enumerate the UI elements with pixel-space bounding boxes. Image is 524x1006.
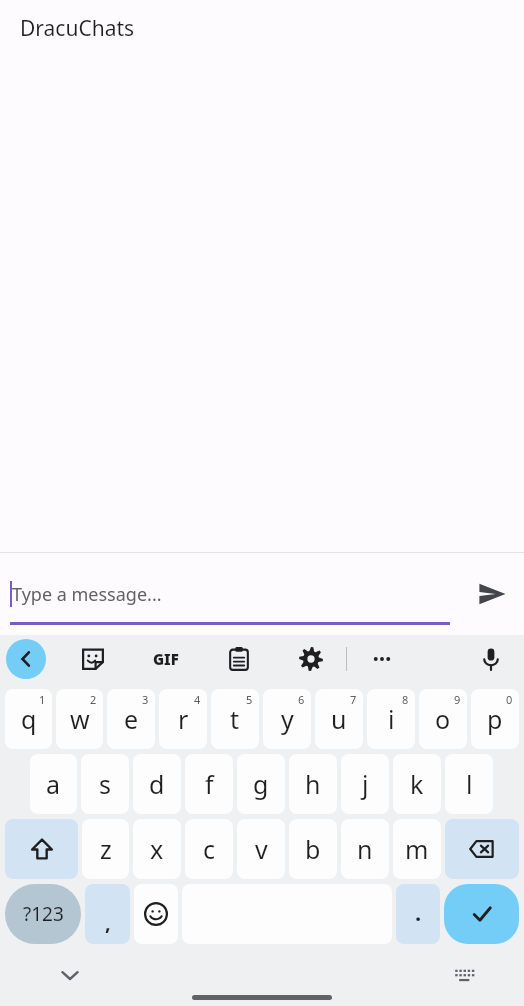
staticText: g	[253, 767, 269, 801]
staticText: GIF	[153, 649, 179, 669]
staticText: y	[281, 702, 294, 736]
staticText: i	[388, 702, 395, 736]
button[interactable]: r	[159, 689, 207, 749]
button[interactable]: i	[367, 689, 415, 749]
button[interactable]: a	[30, 754, 77, 814]
button[interactable]: o	[419, 689, 467, 749]
staticText: 1	[39, 692, 46, 707]
button[interactable]: g	[237, 754, 285, 814]
staticText: c	[203, 832, 216, 866]
button[interactable]: n	[341, 819, 389, 879]
button[interactable]: More	[361, 638, 403, 680]
button[interactable]: Type a message...	[10, 553, 450, 635]
button[interactable]: w	[56, 689, 103, 749]
staticText: 8	[402, 692, 409, 707]
staticText: 2	[90, 692, 97, 707]
staticText: 9	[454, 692, 461, 707]
staticText: 7	[350, 692, 357, 707]
button[interactable]: ?123	[5, 884, 81, 944]
staticText: ,	[105, 909, 111, 936]
staticText: 4	[194, 692, 201, 707]
button[interactable]: t	[211, 689, 259, 749]
staticText: n	[357, 832, 373, 866]
button[interactable]: Settings	[290, 638, 332, 680]
staticText: z	[100, 832, 112, 866]
button[interactable]: Enter	[444, 884, 519, 944]
button[interactable]: p	[471, 689, 519, 749]
staticText: 6	[298, 692, 305, 707]
staticText: t	[230, 702, 240, 736]
button[interactable]: j	[341, 754, 389, 814]
button[interactable]: u	[315, 689, 363, 749]
button[interactable]: s	[81, 754, 129, 814]
button[interactable]: Voice input	[470, 638, 512, 680]
button[interactable]: k	[393, 754, 441, 814]
button[interactable]: Shift	[5, 819, 78, 879]
staticText: u	[331, 702, 347, 736]
staticText: .	[415, 897, 422, 927]
staticText: p	[487, 702, 503, 736]
staticText: 3	[142, 692, 149, 707]
staticText: ?123	[23, 901, 64, 927]
button[interactable]: h	[289, 754, 337, 814]
button[interactable]: Emoji	[134, 884, 178, 944]
button[interactable]: Backspace	[445, 819, 519, 879]
button[interactable]: e	[107, 689, 155, 749]
button[interactable]: Send	[460, 553, 524, 635]
staticText: 0	[506, 692, 513, 707]
button[interactable]: z	[82, 819, 129, 879]
staticText: o	[435, 702, 451, 736]
button[interactable]: f	[185, 754, 233, 814]
button[interactable]: GIF	[144, 637, 188, 681]
staticText: q	[21, 702, 37, 736]
button[interactable]: Stickers	[72, 638, 114, 680]
staticText: e	[124, 702, 139, 736]
staticText: 5	[246, 692, 253, 707]
button[interactable]: q	[5, 689, 52, 749]
button[interactable]: d	[133, 754, 181, 814]
button[interactable]: b	[289, 819, 337, 879]
staticText: b	[305, 832, 321, 866]
staticText: j	[362, 767, 369, 801]
button[interactable]: Back	[6, 639, 46, 679]
button[interactable]: Clipboard	[218, 638, 260, 680]
staticText: a	[46, 767, 61, 801]
button[interactable]: v	[237, 819, 285, 879]
staticText: w	[70, 702, 90, 736]
button[interactable]: c	[185, 819, 233, 879]
button[interactable]: m	[393, 819, 441, 879]
button[interactable]: x	[133, 819, 181, 879]
staticText: m	[405, 832, 429, 866]
staticText: s	[99, 767, 111, 801]
staticText: l	[466, 767, 473, 801]
button[interactable]: Change keyboard	[444, 955, 484, 995]
staticText: v	[255, 832, 268, 866]
button[interactable]: .	[396, 884, 440, 944]
button[interactable]: y	[263, 689, 311, 749]
staticText: Type a message...	[12, 582, 162, 607]
staticText: r	[178, 702, 189, 736]
staticText: DracuChats	[20, 14, 135, 43]
button[interactable]: ,	[85, 884, 130, 944]
button[interactable]: Hide keyboard	[50, 955, 90, 995]
staticText: k	[410, 767, 424, 801]
staticText: h	[305, 767, 321, 801]
staticText: f	[205, 767, 214, 801]
staticText: d	[149, 767, 165, 801]
staticText: x	[150, 832, 164, 866]
button[interactable]: l	[445, 754, 493, 814]
